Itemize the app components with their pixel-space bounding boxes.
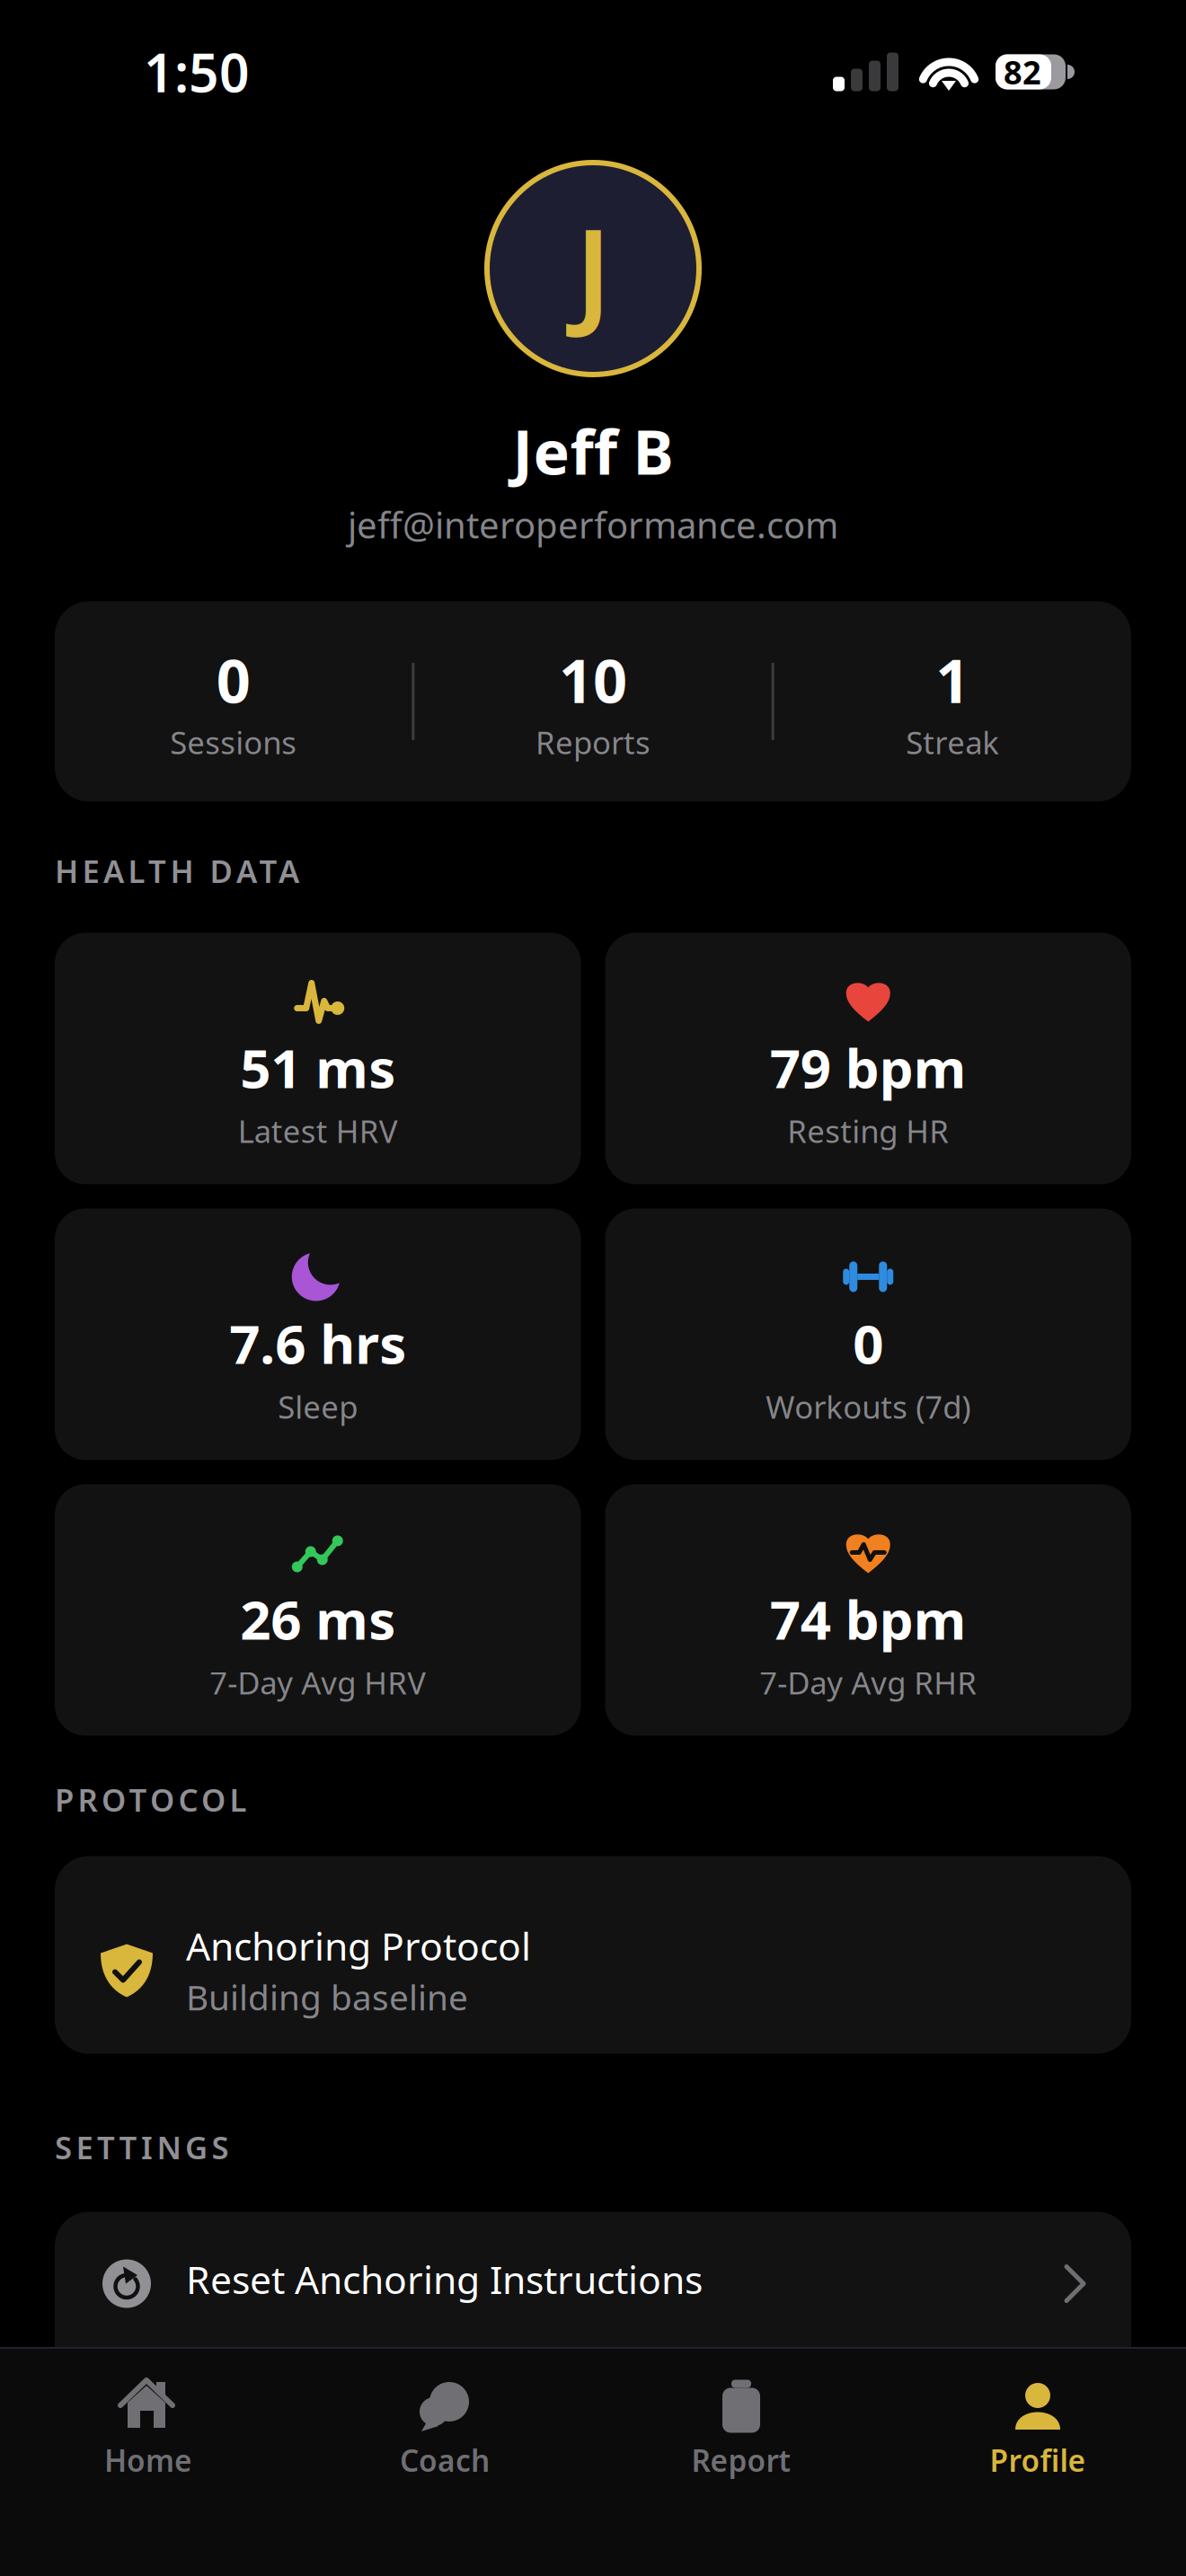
- button[interactable]: Coach: [296, 2349, 593, 2503]
- staticText: 79 bpm: [770, 1032, 967, 1103]
- staticText: J: [575, 191, 611, 346]
- staticText: jeff@interoperformance.com: [348, 501, 838, 548]
- staticText: 10: [559, 640, 627, 720]
- staticText: Anchoring Protocol: [186, 1920, 531, 1971]
- staticText: 0: [216, 640, 250, 720]
- staticText: 0: [853, 1307, 883, 1379]
- button[interactable]: Report: [593, 2349, 889, 2503]
- button[interactable]: Reset Anchoring Instructions: [0, 2212, 1186, 2399]
- staticText: 7-Day Avg RHR: [759, 1662, 977, 1703]
- staticText: 51 ms: [240, 1032, 396, 1103]
- staticText: HEALTH DATA: [55, 850, 299, 891]
- staticText: Workouts (7d): [766, 1386, 971, 1427]
- staticText: 82: [1004, 50, 1041, 93]
- staticText: 7.6 hrs: [229, 1307, 406, 1379]
- staticText: Coach: [400, 2440, 490, 2480]
- staticText: Latest HRV: [238, 1110, 398, 1152]
- staticText: 1: [936, 640, 970, 720]
- staticText: Building baseline: [186, 1974, 468, 2020]
- staticText: Sessions: [170, 721, 297, 763]
- staticText: Reports: [535, 721, 651, 763]
- staticText: SETTINGS: [55, 2126, 229, 2168]
- staticText: 26 ms: [240, 1583, 396, 1655]
- staticText: Profile: [990, 2440, 1086, 2480]
- button[interactable]: Home: [0, 2349, 296, 2503]
- staticText: Resting HR: [787, 1110, 949, 1152]
- staticText: 7-Day Avg HRV: [210, 1662, 426, 1703]
- staticText: 74 bpm: [770, 1583, 967, 1655]
- staticText: PROTOCOL: [55, 1779, 247, 1820]
- staticText: Home: [104, 2440, 192, 2480]
- button[interactable]: Anchoring Protocol: [0, 1856, 1186, 2054]
- staticText: Sleep: [278, 1386, 358, 1427]
- staticText: Jeff B: [513, 410, 673, 492]
- staticText: Streak: [906, 721, 999, 763]
- button[interactable]: Profile: [889, 2349, 1186, 2503]
- staticText: Report: [691, 2440, 791, 2480]
- staticText: 1:50: [144, 37, 250, 107]
- staticText: Reset Anchoring Instructions: [186, 2254, 703, 2305]
